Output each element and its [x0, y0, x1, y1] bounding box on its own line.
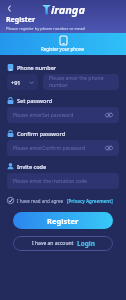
- staticText: Please enterConfirm password: [13, 145, 86, 152]
- button[interactable]: Please enter the phone number: [43, 74, 119, 90]
- button[interactable]: I have an account: [13, 236, 113, 251]
- button[interactable]: Register: [13, 212, 113, 229]
- staticText: Phone number: [17, 64, 57, 71]
- staticText: Register your phone: [41, 46, 85, 52]
- button[interactable]: Please enterConfirm password: [7, 140, 119, 156]
- staticText: Login: [77, 239, 95, 248]
- button[interactable]: Please enter the invitation code: [7, 173, 119, 189]
- staticText: +91: [11, 79, 21, 86]
- staticText: I have read and agree: [17, 198, 64, 204]
- button[interactable]: [Privacy Agreement]: [67, 198, 113, 204]
- staticText: Register: [6, 15, 36, 25]
- button[interactable]: Back: [3, 2, 16, 15]
- staticText: Please enter the phone number: [49, 75, 113, 89]
- staticText: Please enterSet password: [13, 112, 74, 119]
- staticText: Please register by phone number or email: [6, 26, 85, 31]
- button[interactable]: Show password: [105, 111, 113, 119]
- button[interactable]: Please enterSet password: [7, 107, 119, 123]
- button[interactable]: Register your phone: [0, 33, 126, 55]
- button[interactable]: Show password: [105, 144, 113, 152]
- button[interactable]: I have read and agree: [7, 197, 119, 204]
- staticText: Register: [47, 216, 79, 226]
- button[interactable]: +91: [7, 74, 38, 90]
- staticText: Please enter the invitation code: [13, 178, 88, 185]
- staticText: Set password: [17, 97, 53, 104]
- staticText: iranga: [51, 2, 85, 17]
- staticText: Invite code: [17, 163, 47, 170]
- staticText: I have an account: [32, 240, 74, 247]
- staticText: Confirm password: [17, 130, 66, 137]
